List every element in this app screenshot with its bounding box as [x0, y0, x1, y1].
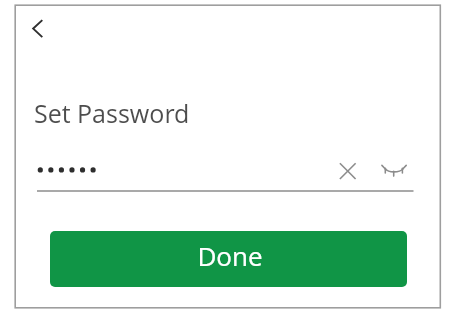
staticText: Done: [197, 238, 263, 273]
button[interactable]: Show password: [378, 158, 408, 188]
staticText: Set Password: [34, 96, 190, 130]
button[interactable]: Clear text: [333, 156, 361, 184]
button[interactable]: Done: [50, 231, 407, 287]
button[interactable]: Back: [24, 12, 58, 46]
